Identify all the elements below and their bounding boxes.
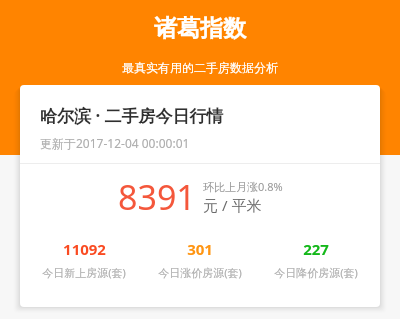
button[interactable]: 哈尔滨 · 二手房今日行情 bbox=[20, 85, 380, 307]
staticText: 8391 bbox=[118, 174, 196, 220]
button[interactable]: 301 bbox=[142, 237, 258, 282]
staticText: 今日新上房源(套) bbox=[42, 265, 126, 280]
staticText: 227 bbox=[303, 239, 329, 259]
staticText: 今日涨价房源(套) bbox=[158, 265, 242, 280]
staticText: 诸葛指数 bbox=[154, 14, 246, 43]
staticText: 今日降价房源(套) bbox=[274, 265, 358, 280]
staticText: 环比上月涨0.8% bbox=[203, 179, 283, 194]
staticText: 元 / 平米 bbox=[203, 195, 262, 215]
staticText: 哈尔滨 · 二手房今日行情 bbox=[40, 104, 224, 127]
staticText: 最真实有用的二手房数据分析 bbox=[122, 60, 278, 75]
staticText: 11092 bbox=[63, 239, 106, 259]
button[interactable]: 227 bbox=[258, 237, 374, 282]
staticText: 301 bbox=[187, 239, 213, 259]
staticText: 更新于2017-12-04 00:00:01 bbox=[40, 135, 190, 151]
button[interactable]: 11092 bbox=[26, 237, 142, 282]
